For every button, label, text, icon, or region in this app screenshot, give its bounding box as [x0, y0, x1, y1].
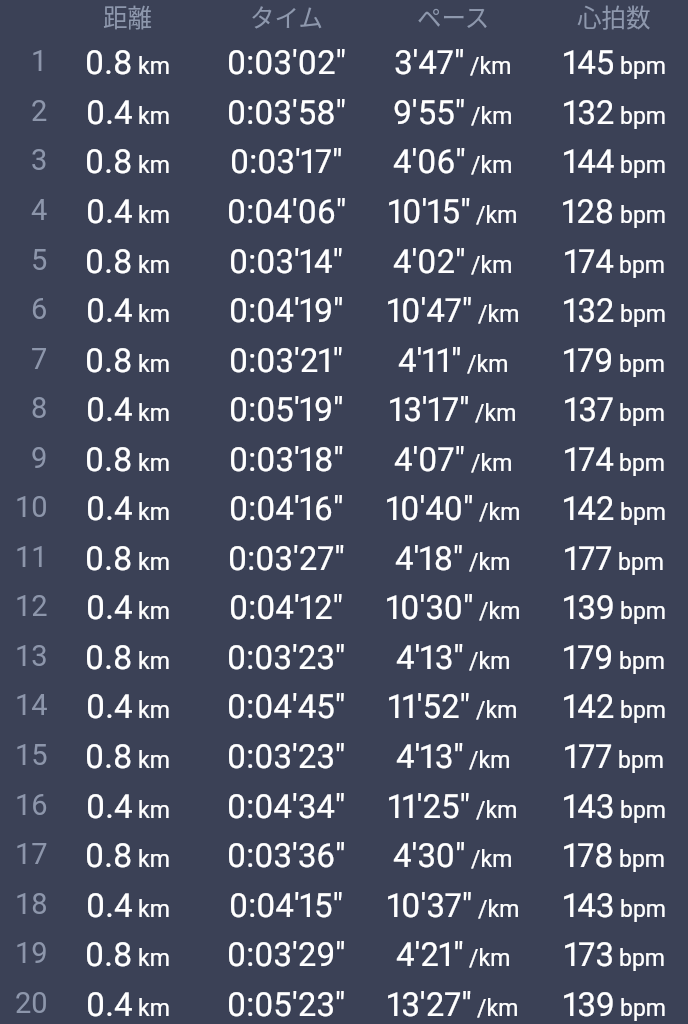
button[interactable]: 18 — [0, 880, 688, 930]
button[interactable]: 20 — [0, 979, 688, 1024]
staticText: 0.8 — [85, 440, 133, 479]
staticText: 132 — [563, 93, 615, 132]
staticText: 4'18" — [395, 539, 464, 578]
staticText: 174 — [564, 440, 614, 479]
button[interactable]: 4 — [0, 186, 688, 236]
staticText: 4'06" — [393, 142, 466, 181]
staticText: bpm — [620, 53, 666, 80]
staticText: km — [138, 53, 170, 80]
staticText: bpm — [618, 747, 664, 774]
button[interactable]: 10 — [0, 483, 688, 533]
staticText: 14 — [15, 688, 48, 722]
staticText: 7 — [31, 342, 48, 376]
button[interactable]: 16 — [0, 781, 688, 831]
staticText: 4'11" — [398, 341, 462, 380]
staticText: 0.8 — [85, 539, 133, 578]
button[interactable]: 6 — [0, 285, 688, 335]
staticText: 0:04'34" — [227, 787, 346, 826]
staticText: 0:03'23" — [227, 638, 346, 677]
staticText: 1 — [31, 44, 48, 78]
staticText: 0:04'06" — [227, 192, 347, 231]
staticText: km — [138, 846, 170, 873]
staticText: 177 — [564, 737, 613, 776]
staticText: 0.8 — [85, 242, 133, 281]
staticText: /km — [471, 152, 513, 179]
staticText: bpm — [620, 499, 666, 526]
staticText: km — [138, 450, 170, 477]
staticText: 137 — [564, 390, 614, 429]
staticText: km — [138, 252, 170, 279]
staticText: 心拍数 — [577, 0, 651, 34]
button[interactable]: 15 — [0, 731, 688, 781]
staticText: 0.8 — [85, 737, 133, 776]
staticText: 2 — [31, 94, 48, 128]
staticText: 0:03'02" — [227, 43, 346, 82]
staticText: 11'52" — [388, 687, 471, 726]
staticText: 5 — [31, 243, 48, 277]
staticText: bpm — [620, 103, 666, 130]
button[interactable]: 2 — [0, 87, 688, 137]
staticText: bpm — [620, 152, 666, 179]
staticText: 0:03'21" — [229, 341, 344, 380]
staticText: /km — [471, 252, 513, 279]
staticText: bpm — [619, 400, 665, 427]
staticText: km — [138, 152, 170, 179]
staticText: 178 — [563, 836, 614, 875]
staticText: 4'13" — [396, 638, 464, 677]
staticText: /km — [469, 549, 511, 576]
staticText: 174 — [564, 242, 614, 281]
staticText: /km — [479, 598, 521, 625]
staticText: 4'30" — [393, 836, 466, 875]
staticText: 4 — [31, 193, 48, 227]
staticText: bpm — [620, 598, 666, 625]
button[interactable]: 7 — [0, 335, 688, 385]
staticText: ペース — [417, 0, 490, 34]
staticText: 0:04'19" — [229, 291, 344, 330]
button[interactable]: 8 — [0, 384, 688, 434]
staticText: 0:04'16" — [229, 489, 344, 528]
staticText: bpm — [620, 301, 666, 328]
staticText: 0.4 — [86, 588, 133, 627]
button[interactable]: 14 — [0, 681, 688, 731]
staticText: 3'47" — [394, 43, 465, 82]
button[interactable]: 3 — [0, 136, 688, 186]
staticText: 4'02" — [393, 242, 466, 281]
staticText: 4'07" — [394, 440, 466, 479]
staticText: 4'21" — [396, 935, 464, 974]
staticText: 139 — [563, 985, 615, 1024]
staticText: 0.8 — [85, 935, 133, 974]
staticText: 0:05'23" — [227, 985, 346, 1024]
staticText: 17 — [15, 837, 48, 871]
staticText: /km — [476, 697, 518, 724]
staticText: 173 — [564, 935, 614, 974]
staticText: 10'47" — [387, 291, 473, 330]
staticText: 0:03'58" — [227, 93, 346, 132]
staticText: bpm — [618, 549, 664, 576]
staticText: 0:03'14" — [229, 242, 344, 281]
staticText: km — [138, 747, 170, 774]
staticText: bpm — [620, 995, 666, 1022]
button[interactable]: 9 — [0, 434, 688, 484]
button[interactable]: 11 — [0, 533, 688, 583]
staticText: km — [138, 697, 170, 724]
button[interactable]: 12 — [0, 582, 688, 632]
staticText: 144 — [563, 142, 615, 181]
button[interactable]: 5 — [0, 236, 688, 286]
staticText: bpm — [620, 697, 666, 724]
button[interactable]: 19 — [0, 929, 688, 979]
staticText: bpm — [619, 846, 665, 873]
staticText: bpm — [619, 945, 665, 972]
staticText: km — [138, 598, 170, 625]
button[interactable]: 1 — [0, 37, 688, 87]
staticText: 0.4 — [86, 787, 133, 826]
button[interactable]: 17 — [0, 830, 688, 880]
staticText: 4'13" — [396, 737, 464, 776]
staticText: 0.4 — [86, 489, 133, 528]
staticText: /km — [469, 945, 511, 972]
button[interactable]: 13 — [0, 632, 688, 682]
staticText: 10'30" — [386, 588, 474, 627]
staticText: 0:05'19" — [229, 390, 344, 429]
staticText: bpm — [619, 252, 665, 279]
staticText: /km — [471, 103, 513, 130]
staticText: 0:03'29" — [227, 935, 346, 974]
